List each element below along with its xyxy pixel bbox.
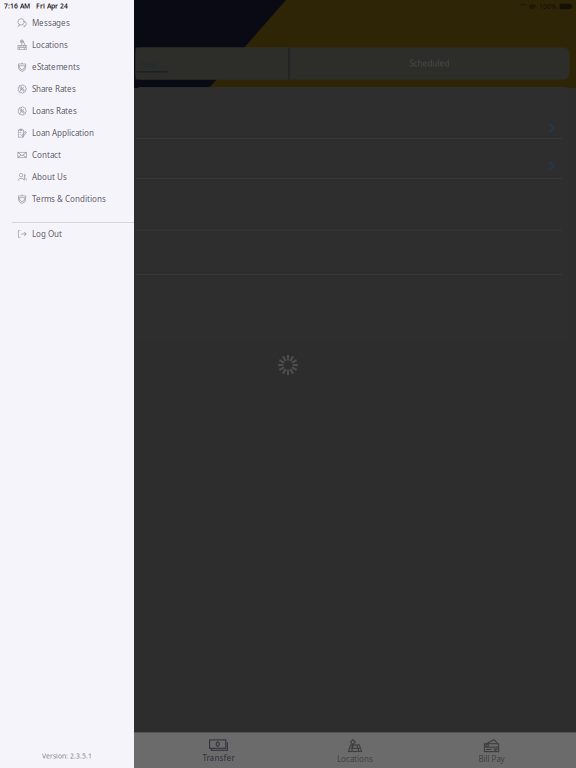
staticText: Scheduled <box>409 58 449 69</box>
staticText: eStatements <box>32 62 80 72</box>
staticText: Loans Rates <box>32 106 77 116</box>
staticText: Locations <box>32 40 68 50</box>
staticText: Locations <box>337 754 373 764</box>
staticText: 7:16 AM <box>4 2 30 10</box>
staticText: Fri Apr 24 <box>36 2 68 10</box>
button[interactable]: Log Out <box>0 223 134 245</box>
button[interactable]: Share Rates <box>0 78 134 100</box>
staticText: 100% <box>539 2 557 11</box>
staticText: Version: 2.3.5.1 <box>42 752 92 760</box>
staticText: New <box>140 59 156 69</box>
button[interactable]: Loans Rates <box>0 100 134 122</box>
staticText: Bill Pay <box>478 754 504 764</box>
button[interactable]: Scheduled <box>289 47 569 79</box>
button[interactable]: Transfer <box>150 732 287 768</box>
button[interactable]: Contact <box>0 144 134 166</box>
staticText: Terms & Conditions <box>32 194 106 204</box>
button[interactable]: Messages <box>0 12 134 34</box>
staticText: Share Rates <box>32 84 76 94</box>
staticText: Messages <box>32 18 70 28</box>
staticText: Loan Application <box>32 128 94 138</box>
button[interactable]: Terms & Conditions <box>0 188 134 210</box>
button[interactable]: eStatements <box>0 56 134 78</box>
button[interactable]: About Us <box>0 166 134 188</box>
staticText: Contact <box>32 150 61 160</box>
staticText: Transfer <box>202 753 234 763</box>
button[interactable]: Loan Application <box>0 122 134 144</box>
staticText: Log Out <box>32 229 62 239</box>
button[interactable]: Locations <box>0 34 134 56</box>
staticText: About Us <box>32 172 67 182</box>
button[interactable]: Locations <box>287 732 423 768</box>
button[interactable]: Bill Pay <box>423 732 560 768</box>
